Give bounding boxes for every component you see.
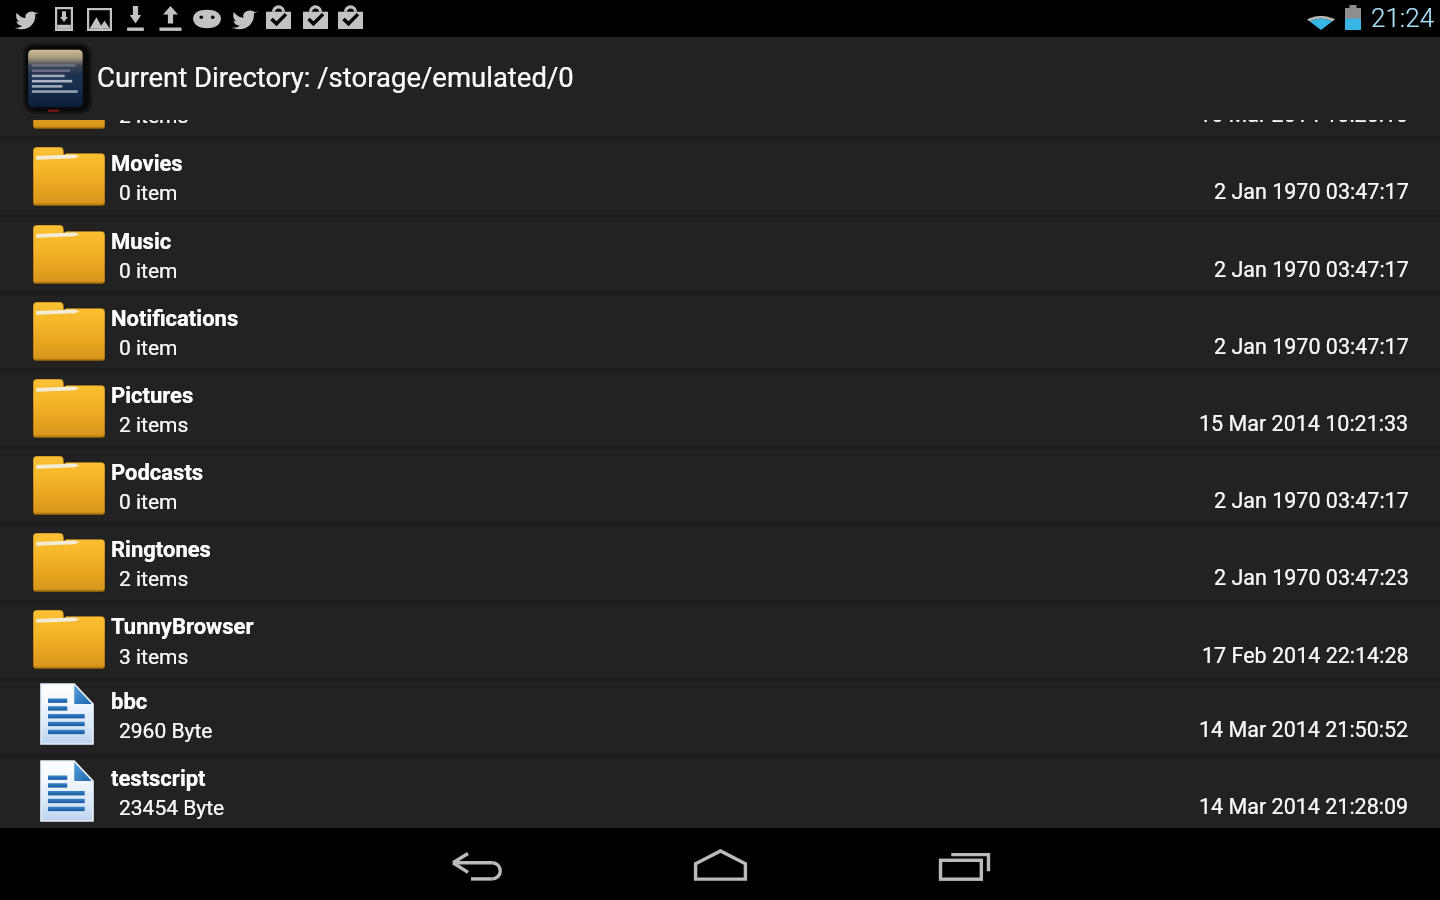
staticText: testscript (111, 766, 206, 792)
button[interactable] (0, 602, 1440, 676)
staticText: 14 Mar 2014 21:50:52 (1199, 717, 1409, 742)
button[interactable] (0, 680, 1440, 754)
staticText: 2 items (119, 413, 189, 438)
staticText: Movies (111, 151, 183, 177)
staticText: 2 Jan 1970 03:47:23 (1214, 565, 1409, 590)
staticText: 23454 Byte (119, 796, 225, 821)
staticText: 0 item (119, 490, 178, 515)
staticText: 17 Feb 2014 22:14:28 (1202, 643, 1409, 668)
staticText: Current Directory: /storage/emulated/0 (97, 61, 574, 93)
staticText: 2960 Byte (119, 719, 213, 744)
button[interactable] (0, 139, 1440, 213)
button[interactable] (0, 371, 1440, 445)
staticText: 2 items (119, 120, 189, 129)
staticText: 3 items (119, 645, 189, 670)
staticText: 21:24 (1371, 3, 1435, 33)
button[interactable] (0, 757, 1440, 828)
staticText: 2 Jan 1970 03:47:17 (1214, 179, 1409, 204)
button[interactable]: Home (640, 828, 800, 900)
staticText: bbc (111, 689, 148, 715)
staticText: Ringtones (111, 537, 211, 563)
staticText: 2 Jan 1970 03:47:17 (1214, 334, 1409, 359)
staticText: 0 item (119, 259, 178, 284)
button[interactable]: Back (397, 828, 557, 900)
staticText: Notifications (111, 306, 239, 332)
staticText: 2 Jan 1970 03:47:17 (1214, 257, 1409, 282)
button[interactable] (0, 448, 1440, 522)
staticText: 0 item (119, 181, 178, 206)
staticText: TunnyBrowser (111, 614, 254, 640)
staticText: 0 item (119, 336, 178, 361)
staticText: 16 Mar 2014 10:20:10 (1199, 120, 1409, 127)
staticText: 2 Jan 1970 03:47:17 (1214, 488, 1409, 513)
button[interactable] (0, 120, 1440, 136)
button[interactable] (0, 217, 1440, 291)
staticText: Pictures (111, 383, 194, 409)
staticText: 14 Mar 2014 21:28:09 (1199, 794, 1409, 819)
button[interactable]: Recent apps (884, 828, 1044, 900)
staticText: Podcasts (111, 460, 204, 486)
button[interactable] (0, 294, 1440, 368)
staticText: 15 Mar 2014 10:21:33 (1199, 411, 1409, 436)
staticText: Music (111, 229, 172, 255)
button[interactable] (0, 525, 1440, 599)
staticText: 2 items (119, 567, 189, 592)
